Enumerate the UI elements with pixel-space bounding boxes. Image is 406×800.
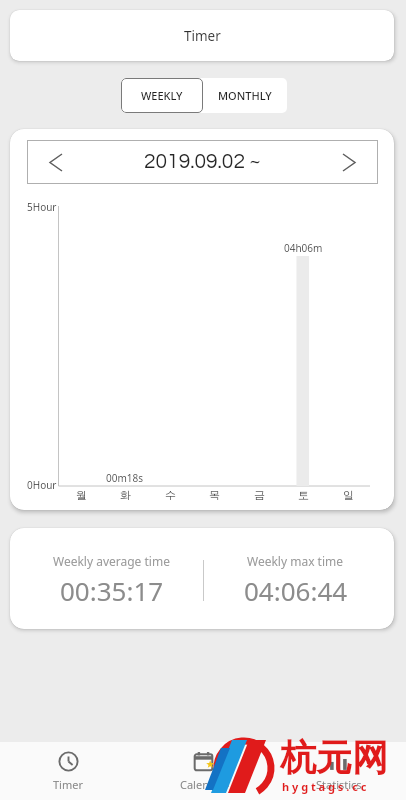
button[interactable]: Next week (320, 140, 378, 184)
staticText: h y g t a g s . c c (282, 779, 367, 794)
staticText: 5Hour (27, 200, 57, 214)
button[interactable]: Statistics (271, 742, 406, 800)
staticText: 04h06m (284, 241, 323, 255)
button[interactable]: WEEKLY (121, 78, 203, 113)
staticText: Timer (53, 777, 83, 792)
staticText: Timer (184, 27, 221, 45)
staticText: 00m18s (106, 471, 144, 485)
staticText: 일 (343, 488, 354, 502)
staticText: 금 (254, 488, 265, 502)
button[interactable]: Timer (10, 10, 394, 61)
staticText: WEEKLY (141, 88, 183, 103)
staticText: Weekly average time (53, 553, 170, 569)
staticText: Statistics (316, 777, 362, 792)
button[interactable]: Calendar (136, 742, 271, 800)
staticText: 0Hour (27, 478, 57, 492)
staticText: Weekly max time (247, 553, 344, 569)
staticText: 토 (298, 488, 309, 502)
button[interactable]: Previous week (27, 140, 85, 184)
button[interactable]: MONTHLY (203, 78, 287, 113)
staticText: 수 (165, 488, 176, 502)
staticText: MONTHLY (218, 88, 272, 103)
staticText: 杭元网 (280, 735, 388, 780)
staticText: Calendar (180, 777, 227, 792)
staticText: 화 (120, 488, 131, 502)
staticText: 04:06:44 (244, 573, 348, 608)
button[interactable]: Timer (0, 742, 136, 800)
staticText: 월 (76, 488, 87, 502)
staticText: 목 (209, 488, 220, 502)
staticText: 2019.09.02 ~ (144, 151, 261, 173)
staticText: 00:35:17 (60, 573, 164, 608)
